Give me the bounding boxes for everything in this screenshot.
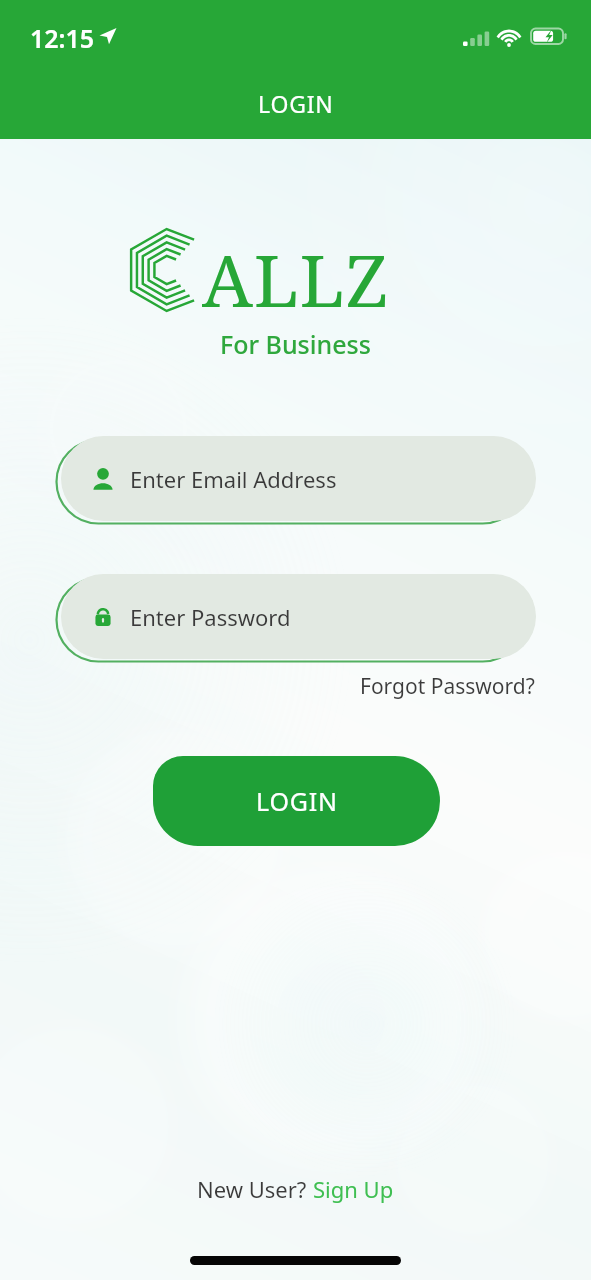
other: User xyxy=(91,467,115,491)
staticText: For Business xyxy=(220,327,371,361)
staticText: LOGIN xyxy=(256,784,338,818)
button[interactable]: User xyxy=(61,436,536,521)
staticText: 12:15 xyxy=(30,21,95,55)
button[interactable]: Password xyxy=(61,574,536,659)
staticText: Enter Email Address xyxy=(130,464,337,494)
other: Password xyxy=(91,605,115,629)
button[interactable]: Sign Up xyxy=(313,1174,394,1204)
staticText: Enter Password xyxy=(130,602,291,632)
staticText: Sign Up xyxy=(313,1174,394,1204)
staticText: New User? xyxy=(197,1174,313,1204)
staticText: LOGIN xyxy=(258,88,334,119)
button[interactable]: LOGIN xyxy=(153,756,440,846)
button[interactable]: Forgot Password? xyxy=(356,668,539,705)
staticText: Forgot Password? xyxy=(360,672,535,701)
staticText: ALLZ xyxy=(202,230,390,328)
